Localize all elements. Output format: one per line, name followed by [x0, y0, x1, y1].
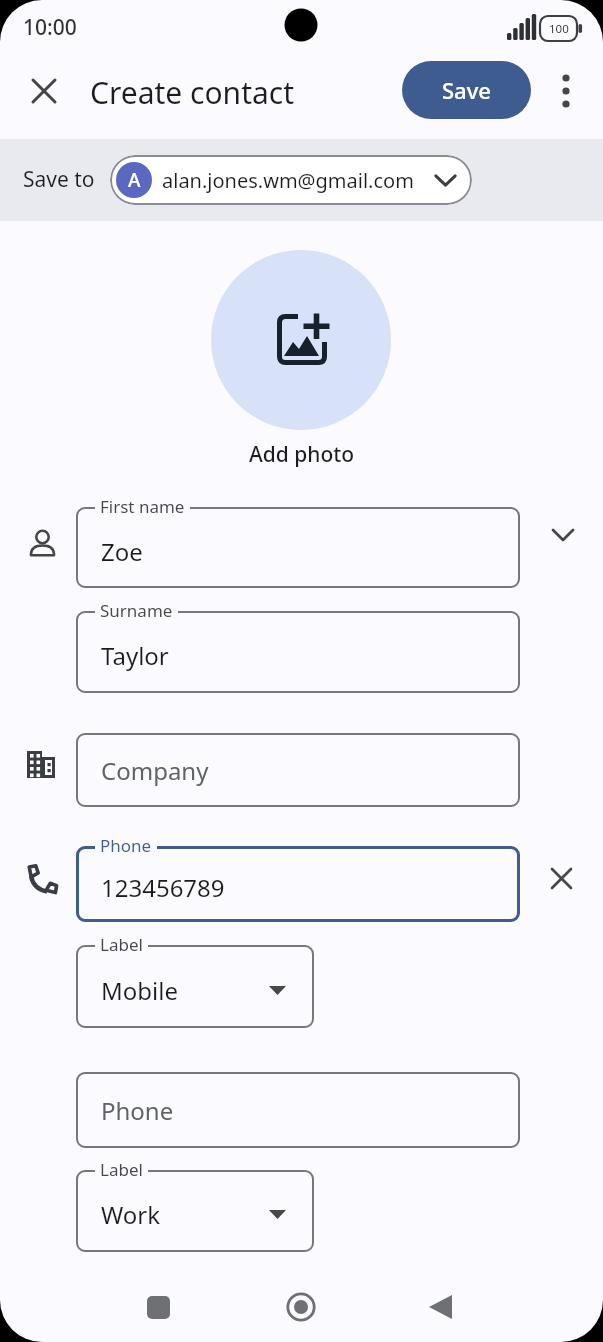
button[interactable] — [76, 733, 520, 807]
button[interactable] — [20, 67, 68, 115]
staticText: Surname — [100, 599, 173, 622]
staticText: Work — [101, 1198, 161, 1231]
staticText: Mobile — [101, 974, 178, 1007]
button[interactable] — [277, 1283, 325, 1331]
staticText: 10:00 — [23, 13, 77, 42]
staticText: Taylor — [101, 639, 169, 672]
staticText: Save to — [23, 165, 95, 194]
button[interactable]: A — [110, 155, 472, 205]
staticText: Label — [100, 933, 143, 956]
button[interactable] — [76, 1170, 314, 1252]
staticText: alan.jones.wm@gmail.com — [162, 167, 414, 194]
staticText: Phone — [101, 1094, 174, 1127]
button[interactable] — [76, 611, 520, 693]
staticText: Company — [101, 754, 209, 787]
staticText: Label — [100, 1158, 143, 1181]
button[interactable] — [76, 1072, 520, 1148]
button[interactable] — [76, 945, 314, 1028]
button[interactable] — [76, 507, 520, 588]
staticText: First name — [100, 495, 185, 518]
button[interactable] — [539, 511, 587, 559]
button[interactable]: Save — [402, 61, 531, 119]
button[interactable] — [537, 854, 585, 902]
staticText: Save — [442, 75, 491, 105]
staticText: A — [128, 167, 141, 193]
staticText: 100 — [549, 21, 569, 37]
staticText: Zoe — [101, 535, 143, 568]
staticText: Phone — [100, 834, 152, 857]
button[interactable] — [417, 1283, 465, 1331]
button[interactable] — [134, 1283, 182, 1331]
button[interactable] — [211, 250, 391, 430]
staticText: 123456789 — [101, 871, 225, 904]
staticText: Create contact — [90, 72, 295, 113]
staticText: Add photo — [249, 440, 355, 469]
button[interactable] — [76, 846, 520, 922]
button[interactable] — [542, 67, 590, 115]
